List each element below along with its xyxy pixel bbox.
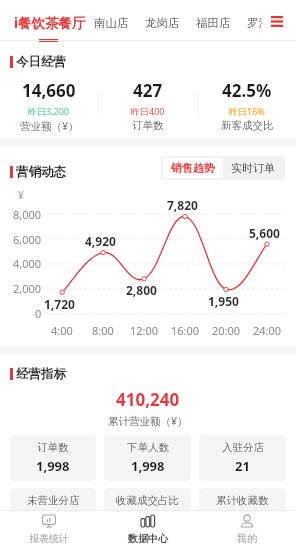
staticText: 昨日16% xyxy=(229,105,265,117)
button[interactable]: 福田店 xyxy=(196,2,231,43)
staticText: 2,000 xyxy=(13,281,42,296)
staticText: 昨日400 xyxy=(131,105,165,117)
staticText: 数据中心 xyxy=(128,532,168,545)
button[interactable]: 销售趋势 xyxy=(163,158,223,178)
button[interactable]: 下单人数 xyxy=(104,435,191,481)
button[interactable]: 报表统计 xyxy=(0,510,98,556)
button[interactable]: 罗湖店 xyxy=(247,2,282,43)
staticText: 32% xyxy=(134,510,161,528)
staticText: 5,600 xyxy=(249,225,280,241)
button[interactable]: 我的 xyxy=(197,510,296,556)
staticText: 21 xyxy=(235,457,250,475)
button[interactable]: 入驻分店 xyxy=(199,435,286,481)
staticText: 未营业分店 xyxy=(27,494,80,507)
staticText: 12:00 xyxy=(130,323,159,338)
staticText: 4,920 xyxy=(85,233,116,249)
staticText: 实时订单 xyxy=(231,161,275,175)
button[interactable]: 实时订单 xyxy=(223,158,283,178)
staticText: 今日经营 xyxy=(16,54,66,70)
staticText: 0 xyxy=(35,306,42,321)
staticText: 20:00 xyxy=(212,323,241,338)
button[interactable]: 菜单 xyxy=(264,1,290,41)
button[interactable]: 龙岗店 xyxy=(145,2,180,43)
staticText: ¥ xyxy=(18,188,24,202)
staticText: 1,950 xyxy=(208,293,239,309)
button[interactable]: 未营业分店 xyxy=(10,488,96,534)
staticText: 8,000 xyxy=(13,207,42,222)
button[interactable]: 收藏成交占比 xyxy=(104,488,191,534)
staticText: 福田店 xyxy=(196,16,231,30)
staticText: 410,240 xyxy=(116,388,180,411)
staticText: 营销动态 xyxy=(16,164,66,180)
staticText: 订单数 xyxy=(37,441,69,454)
staticText: 罗湖店 xyxy=(247,16,282,30)
staticText: 报表统计 xyxy=(29,532,69,545)
staticText: 4:00 xyxy=(51,323,73,338)
staticText: 7,820 xyxy=(167,197,198,213)
staticText: 订单数 xyxy=(132,119,164,132)
staticText: 营业额（¥） xyxy=(20,119,79,133)
staticText: 24:00 xyxy=(253,323,282,338)
staticText: 4,000 xyxy=(13,256,42,271)
staticText: 14,660 xyxy=(22,79,76,102)
staticText: 昨日3,200 xyxy=(28,105,70,117)
staticText: 1,998 xyxy=(36,457,70,475)
staticText: 收藏成交占比 xyxy=(116,494,179,507)
staticText: i餐饮茶餐厅 xyxy=(14,14,86,32)
button[interactable]: 订单数 xyxy=(10,435,96,481)
staticText: 42.5% xyxy=(222,79,272,102)
staticText: 新客成交比 xyxy=(221,119,274,132)
staticText: 16:00 xyxy=(171,323,200,338)
staticText: 入驻分店 xyxy=(222,441,264,454)
staticText: 1,720 xyxy=(44,296,75,312)
staticText: 3 xyxy=(49,510,57,528)
staticText: 龙岗店 xyxy=(145,16,180,30)
staticText: 销售趋势 xyxy=(171,161,215,175)
staticText: 我的 xyxy=(237,532,257,545)
staticText: 998 xyxy=(231,510,254,528)
staticText: 6,000 xyxy=(13,232,42,247)
button[interactable]: 数据中心 xyxy=(98,510,197,556)
staticText: 南山店 xyxy=(94,16,129,30)
staticText: 累计收藏数 xyxy=(216,494,269,507)
button[interactable]: i餐饮茶餐厅 xyxy=(14,2,86,43)
staticText: 累计营业额（¥） xyxy=(108,414,188,428)
staticText: 8:00 xyxy=(92,323,114,338)
staticText: 1,998 xyxy=(131,457,165,475)
button[interactable]: 累计收藏数 xyxy=(199,488,286,534)
staticText: 经营指标 xyxy=(16,366,66,382)
staticText: 427 xyxy=(133,79,163,102)
staticText: 2,800 xyxy=(126,282,157,298)
staticText: 下单人数 xyxy=(127,441,169,454)
button[interactable]: 南山店 xyxy=(94,2,129,43)
